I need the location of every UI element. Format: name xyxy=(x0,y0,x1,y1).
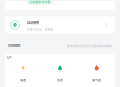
staticText: 水费 xyxy=(57,78,63,82)
staticText: 方便不忘记，优惠多 xyxy=(27,27,54,31)
staticText: 新增缴费 xyxy=(8,43,20,48)
staticText: 燃气费 xyxy=(92,78,101,82)
button[interactable]: 自动缴费 xyxy=(0,16,120,33)
button[interactable]: 电费 xyxy=(5,63,42,84)
button[interactable]: 燃气费 xyxy=(78,63,115,84)
staticText: 立即缴费享优惠 xyxy=(29,0,50,4)
staticText: 所有内所包含的生活账单在这缴纳 xyxy=(67,44,112,48)
button[interactable]: 立即缴费享优惠 xyxy=(27,0,53,5)
staticText: 自动缴费 xyxy=(27,20,39,25)
staticText: 电费 xyxy=(20,78,26,82)
button[interactable]: 水费 xyxy=(42,63,78,84)
